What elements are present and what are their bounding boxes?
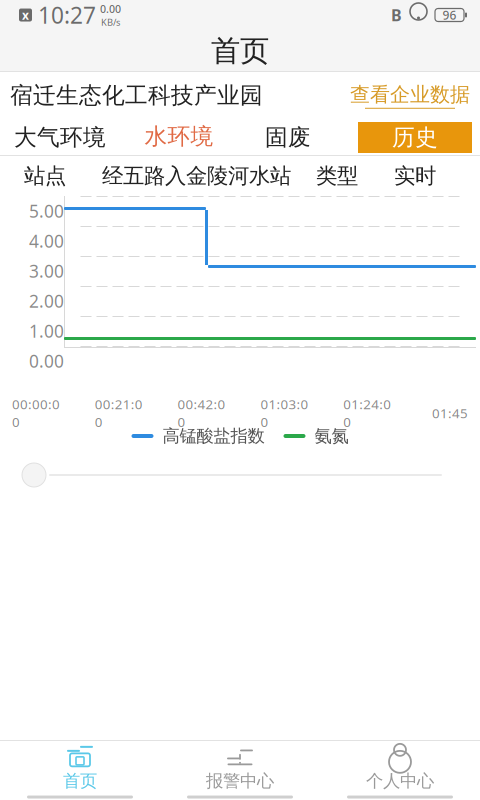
staticText: 个人中心	[366, 770, 434, 792]
button[interactable]: 经五路入金陵河水站	[66, 163, 291, 189]
staticText: 96	[442, 7, 456, 23]
staticText: 00:00:00	[12, 395, 60, 431]
staticText: 0.00	[100, 2, 121, 16]
staticText: 类型	[316, 163, 358, 189]
staticText: 00:42:00	[178, 395, 226, 431]
button[interactable]: 历史	[358, 122, 472, 153]
button[interactable]: Time range slider	[22, 458, 442, 492]
staticText: 大气环境	[14, 124, 106, 151]
staticText: 01:03:00	[260, 395, 308, 431]
staticText: 2.00	[29, 289, 64, 312]
staticText: 首页	[63, 770, 97, 792]
staticText: 3.00	[29, 259, 64, 282]
staticText: 00:21:00	[95, 395, 143, 431]
staticText: 站点	[24, 163, 66, 189]
button[interactable]: 实时	[358, 163, 480, 189]
staticText: 经五路入金陵河水站	[102, 163, 291, 189]
staticText: 5.00	[29, 199, 64, 222]
staticText: 01:45	[432, 404, 468, 422]
button[interactable]: 报警中心	[160, 741, 320, 794]
staticText: 01:24:00	[343, 395, 391, 431]
staticText: 报警中心	[206, 770, 274, 792]
staticText: 宿迁生态化工科技产业园	[10, 82, 263, 109]
staticText: 1.00	[29, 319, 64, 342]
staticText: 固废	[265, 124, 311, 151]
staticText: 氨氮	[314, 425, 348, 447]
staticText: 首页	[211, 33, 269, 69]
staticText: x	[22, 7, 29, 23]
staticText: KB/s	[101, 16, 120, 28]
button[interactable]: 个人中心	[320, 741, 480, 794]
staticText: 0.00	[29, 349, 64, 372]
button[interactable]: 首页	[0, 741, 160, 794]
staticText: 查看企业数据	[350, 82, 470, 107]
staticText: 4.00	[29, 229, 64, 252]
button[interactable]: 固废	[238, 119, 338, 155]
staticText: 历史	[392, 124, 438, 151]
staticText: B	[391, 4, 402, 26]
staticText: 10:27	[38, 0, 96, 30]
button[interactable]: 大气环境	[0, 119, 120, 155]
button[interactable]: 水环境	[120, 119, 238, 155]
staticText: 高锰酸盐指数	[162, 425, 264, 447]
staticText: 实时	[394, 163, 436, 189]
staticText: 水环境	[144, 123, 213, 150]
button[interactable]: 查看企业数据	[350, 82, 480, 109]
